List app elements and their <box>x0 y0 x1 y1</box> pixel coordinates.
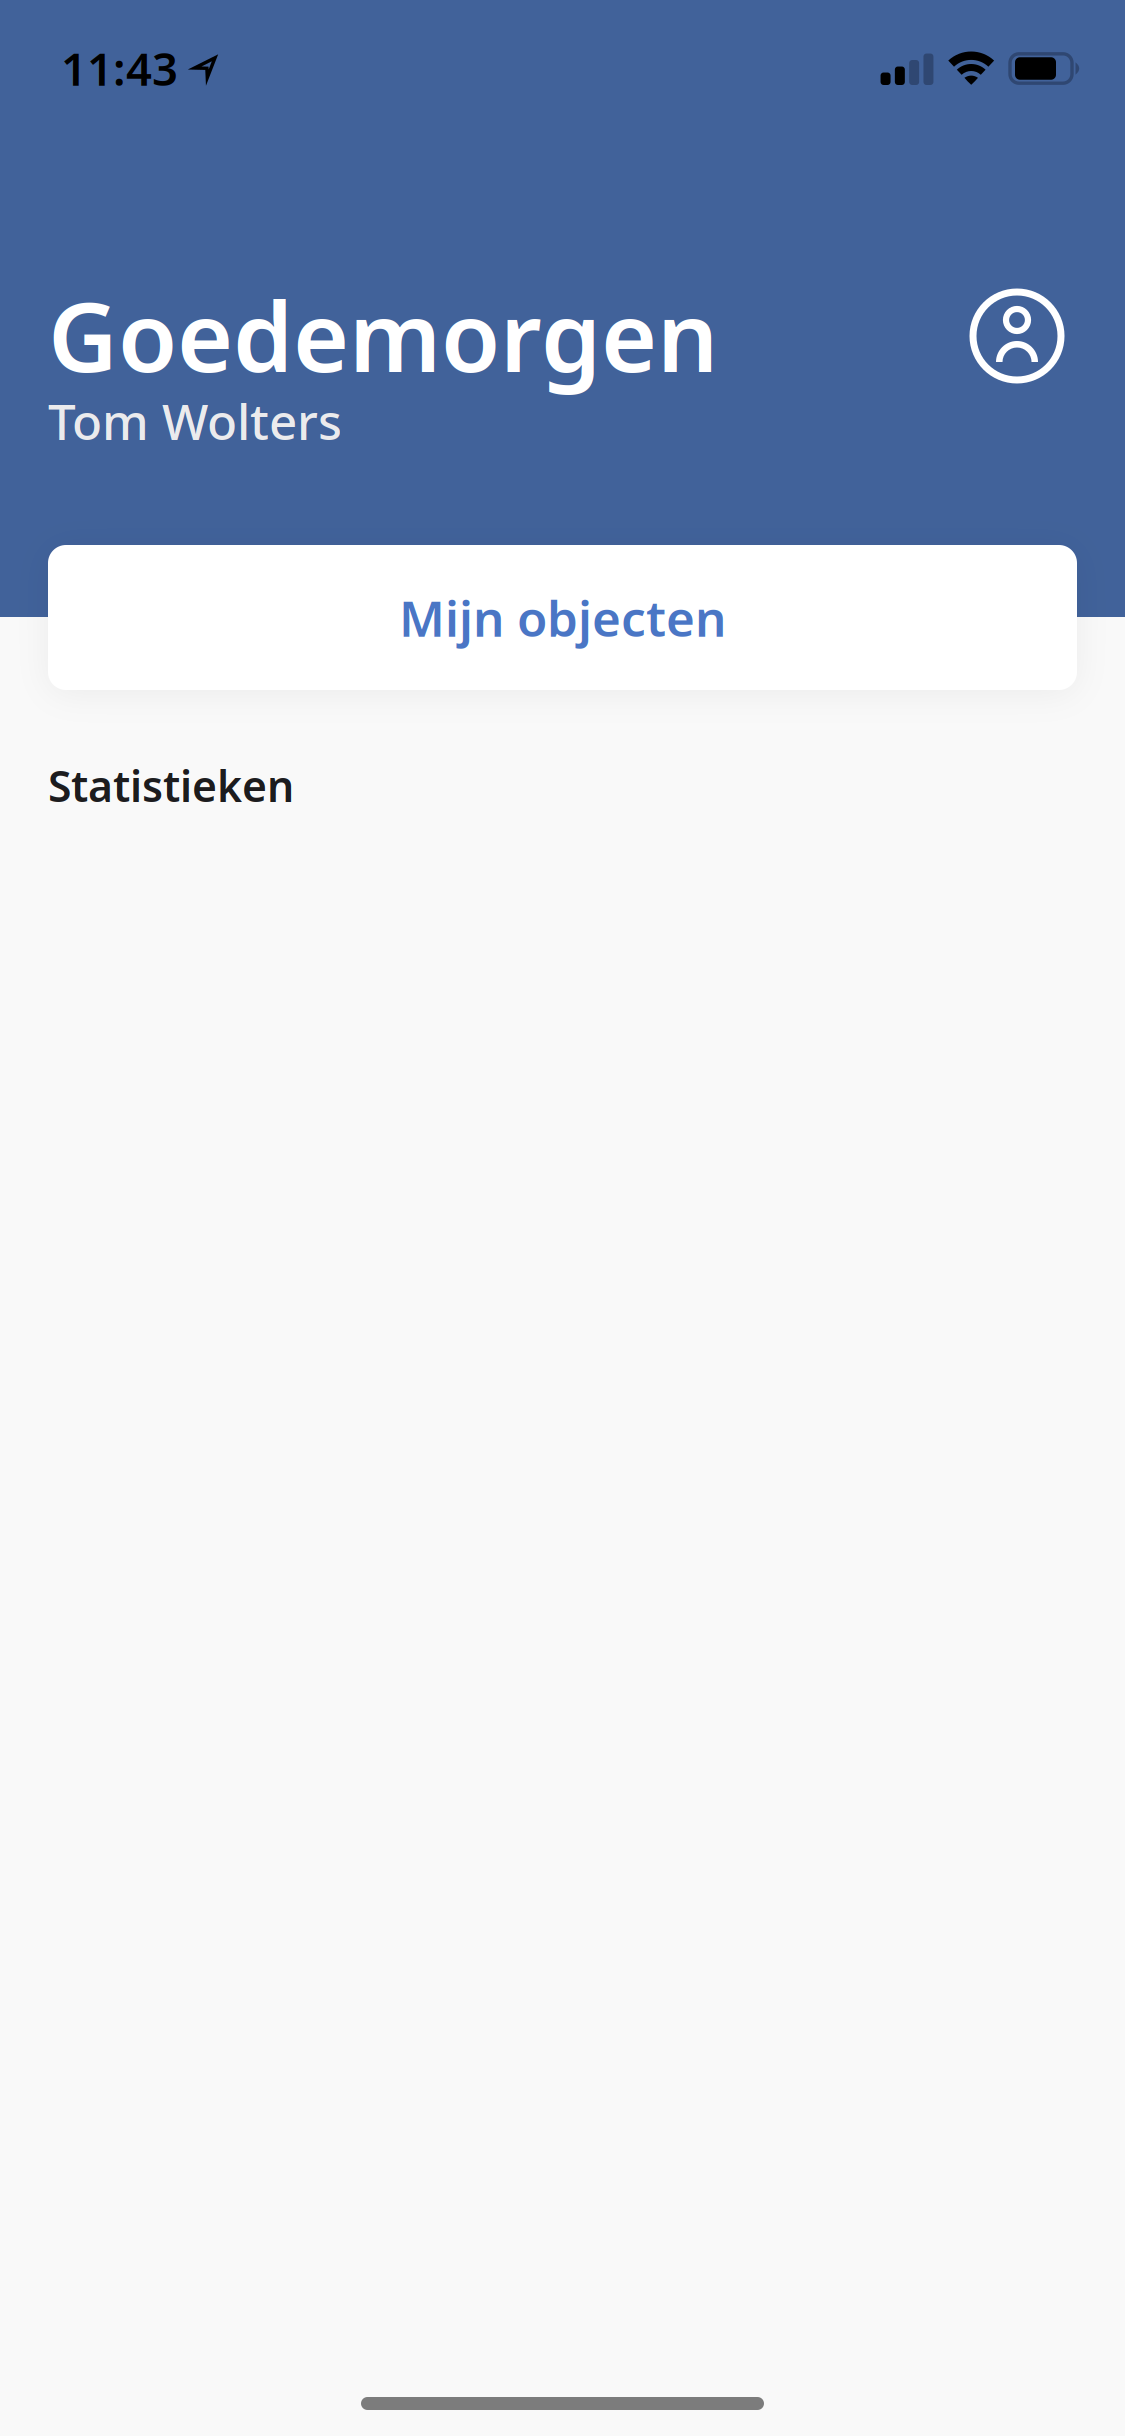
button[interactable]: Profiel <box>969 288 1065 384</box>
staticText: Tom Wolters <box>48 388 342 453</box>
staticText: 11:43 <box>61 38 178 98</box>
staticText: Goedemorgen <box>48 271 718 398</box>
staticText: Mijn objecten <box>399 585 726 650</box>
button[interactable]: Mijn objecten <box>48 545 1077 690</box>
staticText: Statistieken <box>48 757 294 814</box>
